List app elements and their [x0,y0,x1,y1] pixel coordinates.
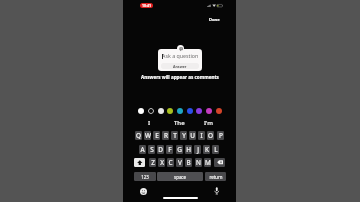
button[interactable] [206,108,212,114]
staticText: T [173,131,177,140]
staticText: N [196,158,201,167]
staticText: O [208,131,213,140]
button[interactable]: K [203,145,210,154]
staticText: Z [151,158,155,167]
button[interactable] [187,108,193,114]
button[interactable]: N [195,158,202,167]
button[interactable] [167,108,173,114]
button[interactable]: A [139,145,146,154]
button[interactable]: B [185,158,192,167]
staticText: The [174,119,185,127]
button[interactable] [138,108,144,114]
staticText: U [190,131,195,140]
button[interactable]: Dictation [214,187,220,195]
staticText: J [197,145,199,154]
staticText: A [140,145,145,154]
staticText: space [174,174,186,180]
button[interactable]: V [176,158,183,167]
button[interactable]: Answer [161,63,199,69]
button[interactable] [158,108,164,114]
staticText: E [155,131,159,140]
button[interactable]: G [176,145,183,154]
button[interactable]: U [189,131,196,140]
button[interactable] [216,108,222,114]
staticText: V [178,158,182,167]
staticText: P [219,131,223,140]
staticText: C [168,158,173,167]
button[interactable]: M [204,158,211,167]
button[interactable]: L [212,145,219,154]
staticText: I [200,131,203,140]
staticText: I [148,119,151,127]
button[interactable]: W [144,131,151,140]
staticText: Answers will appear as comments [141,74,219,80]
button[interactable]: D [157,145,164,154]
button[interactable]: Shift [134,158,145,167]
button[interactable]: return [205,172,226,181]
staticText: R [164,131,168,140]
button[interactable]: Z [149,158,156,167]
staticText: W [145,131,151,140]
staticText: I'm [204,119,214,127]
staticText: S [150,145,154,154]
button[interactable]: Done [208,15,220,24]
button[interactable]: C [167,158,174,167]
button[interactable] [177,108,183,114]
staticText: H [186,145,191,154]
button[interactable] [148,108,154,114]
button[interactable]: space [157,172,203,181]
button[interactable]: I'm [194,118,224,128]
button[interactable]: I [198,131,205,140]
staticText: X [160,158,164,167]
button[interactable]: Y [180,131,187,140]
staticText: Y [182,131,186,140]
staticText: M [205,158,211,167]
staticText: 10:41 [142,3,151,8]
button[interactable]: J [194,145,201,154]
staticText: D [158,145,163,154]
staticText: L [214,145,218,154]
staticText: K [205,145,209,154]
button[interactable]: Emoji [140,188,147,195]
button[interactable]: Ask a question [158,49,202,71]
button[interactable]: Backspace [214,158,225,167]
button[interactable] [196,108,202,114]
staticText: return [209,174,223,180]
button[interactable]: Q [135,131,142,140]
button[interactable]: R [162,131,169,140]
button[interactable]: The [164,118,194,128]
staticText: F [168,145,172,154]
staticText: G [177,145,182,154]
button[interactable]: S [148,145,155,154]
staticText: Answer [173,64,187,69]
button[interactable]: E [153,131,160,140]
button[interactable]: O [207,131,214,140]
button[interactable]: X [158,158,165,167]
button[interactable]: F [166,145,173,154]
staticText: Q [136,131,141,140]
staticText: Ask a question [162,52,199,59]
staticText: 123 [141,174,149,180]
button[interactable]: 123 [134,172,156,181]
button[interactable]: H [185,145,192,154]
staticText: Done [209,17,220,23]
button[interactable]: I [134,118,164,128]
staticText: B [186,158,191,167]
button[interactable]: P [217,131,224,140]
button[interactable]: T [171,131,178,140]
